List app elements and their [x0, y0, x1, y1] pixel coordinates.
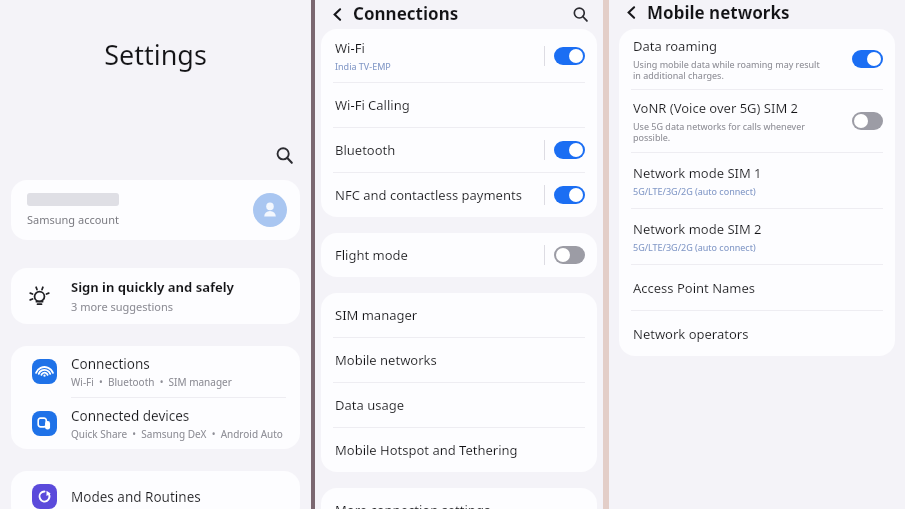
button[interactable]: Toggle on: [554, 186, 585, 204]
staticText: Connections: [353, 2, 459, 25]
button[interactable]: Access Point Names: [619, 265, 895, 310]
button[interactable]: Network mode SIM 1: [619, 153, 895, 208]
button[interactable]: Mobile Hotspot and Tethering: [321, 428, 597, 472]
staticText: 5G/LTE/3G/2G (auto connect): [633, 185, 756, 197]
button[interactable]: Toggle on: [554, 47, 585, 65]
button[interactable]: Back: [326, 3, 348, 25]
button[interactable]: Search: [270, 141, 298, 169]
staticText: Network mode SIM 2: [633, 220, 762, 238]
staticText: 5G/LTE/3G/2G (auto connect): [633, 241, 756, 253]
staticText: Mobile Hotspot and Tethering: [335, 441, 518, 459]
staticText: Samsung account: [27, 212, 119, 227]
button[interactable]: Network operators: [619, 311, 895, 356]
staticText: Data usage: [335, 396, 405, 414]
button[interactable]: Data usage: [321, 383, 597, 427]
button[interactable]: Wi-Fi Calling: [321, 83, 597, 127]
staticText: Bluetooth: [335, 141, 396, 159]
button[interactable]: Toggle off: [554, 246, 585, 264]
staticText: Settings: [0, 36, 311, 73]
button[interactable]: More connection settings: [321, 488, 597, 509]
button[interactable]: Samsung account: [11, 180, 300, 240]
button[interactable]: Flight mode: [321, 233, 597, 277]
staticText: NFC and contactless payments: [335, 186, 522, 204]
staticText: Sign in quickly and safely: [71, 278, 235, 296]
button[interactable]: Data roaming: [619, 29, 895, 89]
button[interactable]: Bluetooth: [321, 128, 597, 172]
button[interactable]: VoNR (Voice over 5G) SIM 2: [619, 90, 895, 152]
staticText: Flight mode: [335, 246, 408, 264]
button[interactable]: Toggle on: [852, 50, 883, 68]
staticText: Wi-Fi • Bluetooth • SIM manager: [71, 375, 232, 389]
button[interactable]: Toggle on: [554, 141, 585, 159]
staticText: Wi-Fi Calling: [335, 96, 410, 114]
staticText: Mobile networks: [647, 1, 790, 24]
button[interactable]: Sign in quickly and safely: [11, 268, 300, 324]
staticText: Wi-Fi: [335, 39, 365, 57]
staticText: Data roaming: [633, 37, 717, 55]
staticText: Use 5G data networks for calls whenever …: [633, 120, 805, 144]
button[interactable]: Modes and Routines: [11, 471, 300, 509]
staticText: Connections: [71, 355, 150, 373]
staticText: 3 more suggestions: [71, 299, 174, 314]
staticText: India TV-EMP: [335, 60, 391, 72]
staticText: Access Point Names: [633, 279, 756, 297]
button[interactable]: Connections: [11, 346, 300, 397]
staticText: Network mode SIM 1: [633, 164, 762, 182]
staticText: Network operators: [633, 325, 749, 343]
staticText: Mobile networks: [335, 351, 437, 369]
staticText: Quick Share • Samsung DeX • Android Auto: [71, 427, 283, 441]
button[interactable]: SIM manager: [321, 293, 597, 337]
button[interactable]: Back: [620, 1, 642, 23]
button[interactable]: Toggle off: [852, 112, 883, 130]
staticText: Connected devices: [71, 407, 190, 425]
staticText: More connection settings: [335, 501, 491, 509]
staticText: SIM manager: [335, 306, 418, 324]
button[interactable]: Search: [568, 2, 592, 26]
staticText: VoNR (Voice over 5G) SIM 2: [633, 99, 798, 117]
button[interactable]: Wi-Fi: [321, 29, 597, 82]
button[interactable]: Connected devices: [11, 398, 300, 449]
button[interactable]: Mobile networks: [321, 338, 597, 382]
button[interactable]: NFC and contactless payments: [321, 173, 597, 217]
staticText: Using mobile data while roaming may resu…: [633, 58, 820, 82]
staticText: Modes and Routines: [71, 488, 201, 506]
button[interactable]: Network mode SIM 2: [619, 209, 895, 264]
